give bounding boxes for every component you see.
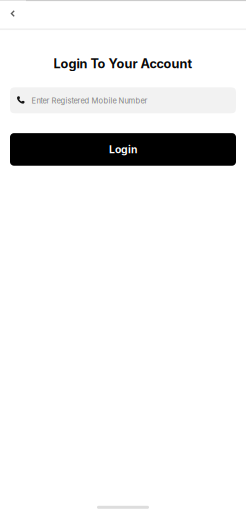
staticText: Enter Registered Mobile Number xyxy=(31,96,147,105)
button[interactable]: Enter Registered Mobile Number xyxy=(10,87,236,113)
button[interactable]: Login xyxy=(10,133,236,166)
staticText: Login To Your Account xyxy=(53,56,192,71)
staticText: Login xyxy=(109,143,137,156)
button[interactable]: Back xyxy=(0,1,26,29)
